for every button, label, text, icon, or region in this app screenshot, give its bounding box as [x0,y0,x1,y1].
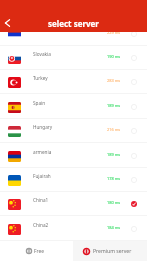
staticText: Slovakia [33,51,51,57]
button[interactable]: Spain [0,95,147,119]
button[interactable]: China1 [0,192,147,216]
staticText: Hungary [33,124,53,130]
button[interactable]: Hungary [0,119,147,143]
button[interactable]: Premium server [73,241,147,261]
button[interactable]: Free [0,241,73,261]
staticText: 184 ms [107,225,121,230]
button[interactable]: Fujairah [0,168,147,192]
staticText: Free [34,248,44,255]
button[interactable]: Slovakia [0,46,147,70]
staticText: China2 [33,222,49,228]
staticText: 189 ms [107,152,121,157]
staticText: Premium server [93,248,132,255]
staticText: 229 ms [107,30,121,35]
button[interactable]: China2 [0,217,147,241]
staticText: 189 ms [107,103,121,108]
button[interactable]: Turkey [0,70,147,94]
button[interactable]: armenia [0,144,147,168]
staticText: 283 ms [107,78,121,83]
staticText: Turkey [33,75,48,81]
button[interactable]: 229 ms [0,22,147,46]
staticText: Spain [33,100,46,106]
staticText: 178 ms [107,176,121,181]
staticText: select server [48,18,99,29]
staticText: 180 ms [107,200,121,205]
button[interactable]: Back [1,17,13,29]
staticText: China1 [33,197,49,203]
staticText: 190 ms [107,54,121,59]
staticText: Fujairah [33,173,51,179]
staticText: 216 ms [107,127,121,132]
staticText: armenia [33,149,52,155]
